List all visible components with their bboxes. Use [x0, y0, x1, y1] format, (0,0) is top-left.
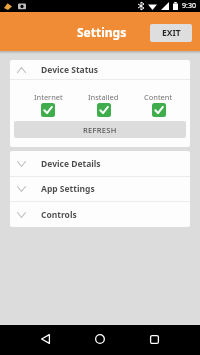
staticText: Controls — [41, 209, 77, 221]
button[interactable]: Controls — [10, 202, 190, 227]
button[interactable] — [146, 331, 162, 347]
staticText: Device Status — [41, 64, 99, 76]
button[interactable] — [92, 331, 108, 347]
button[interactable]: Device Status — [10, 60, 190, 79]
staticText: REFRESH — [83, 125, 117, 135]
staticText: 9:30 — [182, 1, 196, 11]
staticText: Settings — [77, 24, 127, 40]
staticText: Installed — [88, 92, 119, 102]
button[interactable]: REFRESH — [14, 121, 186, 138]
button[interactable]: EXIT — [150, 24, 192, 42]
staticText: App Settings — [41, 183, 95, 195]
button[interactable]: App Settings — [10, 177, 190, 201]
button[interactable]: Device Details — [10, 152, 190, 176]
staticText: Internet — [34, 92, 63, 102]
staticText: Device Details — [41, 158, 101, 170]
staticText: EXIT — [162, 27, 181, 39]
button[interactable] — [37, 331, 53, 347]
staticText: Content — [144, 92, 173, 102]
